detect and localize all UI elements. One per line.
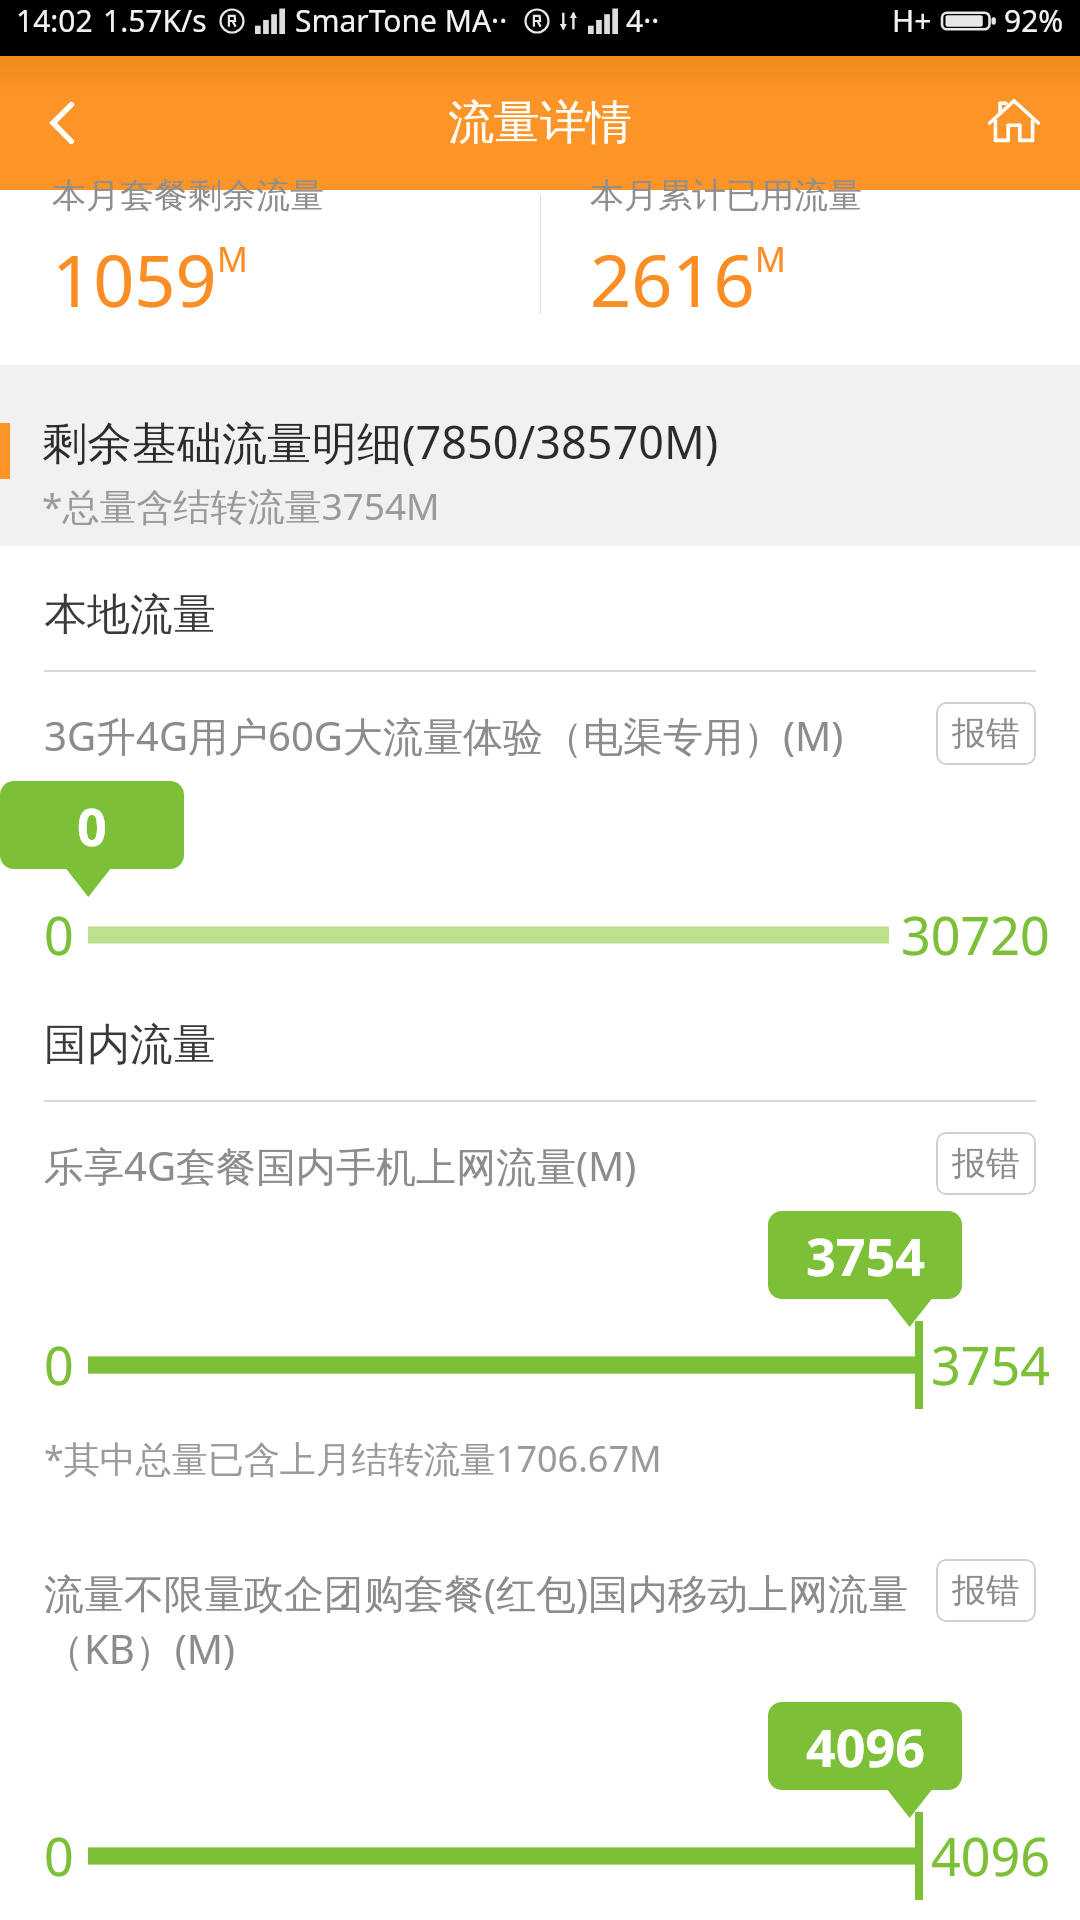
staticText: 本地流量 [44, 588, 216, 642]
staticText: 0 [44, 899, 74, 970]
staticText: 2616 [590, 230, 755, 328]
staticText: 剩余基础流量明细(7850/38570M) [42, 411, 719, 472]
staticText: 4·· [626, 0, 660, 41]
staticText: M [217, 236, 248, 282]
staticText: 1.57K/s [103, 0, 207, 41]
staticText: 4096 [931, 1820, 1050, 1891]
staticText: 3G升4G用户60G大流量体验（电渠专用）(M) [44, 708, 916, 763]
button[interactable]: Back [22, 81, 106, 165]
staticText: M [755, 236, 786, 282]
button[interactable]: Home [970, 79, 1058, 167]
staticText: 30720 [901, 899, 1050, 970]
staticText: H+ [892, 0, 932, 41]
staticText: 92% [1004, 0, 1064, 41]
staticText: SmarTone MA·· [295, 0, 508, 41]
staticText: 0 [44, 1820, 74, 1891]
staticText: 4096 [806, 1711, 925, 1782]
staticText: *总量含结转流量3754M [42, 480, 440, 531]
staticText: 流量详情 [448, 94, 632, 152]
staticText: 3754 [931, 1329, 1050, 1400]
staticText: 流量不限量政企团购套餐(红包)国内移动上网流量 （KB）(M) [44, 1565, 916, 1676]
staticText: 乐享4G套餐国内手机上网流量(M) [44, 1138, 916, 1193]
staticText: 1059 [52, 230, 217, 328]
staticText: 本月累计已用流量 [590, 174, 862, 217]
staticText: 本月套餐剩余流量 [52, 174, 324, 217]
button[interactable]: 报错 [936, 1132, 1036, 1195]
staticText: 报错 [952, 1142, 1020, 1185]
staticText: *其中总量已含上月结转流量1706.67M [44, 1434, 662, 1483]
staticText: 0 [77, 790, 107, 861]
staticText: 14:02 [16, 0, 93, 41]
button[interactable]: 报错 [936, 1559, 1036, 1622]
staticText: 0 [44, 1329, 74, 1400]
staticText: 报错 [952, 712, 1020, 755]
staticText: 报错 [952, 1569, 1020, 1612]
button[interactable]: 报错 [936, 702, 1036, 765]
staticText: 国内流量 [44, 1018, 216, 1072]
staticText: 3754 [806, 1220, 925, 1291]
